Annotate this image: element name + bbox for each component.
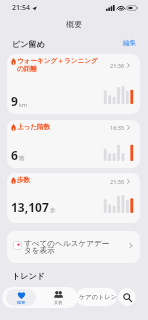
staticText: 16:35 (110, 124, 125, 131)
button[interactable]: すべてのヘルスケアデータを表示 (7, 231, 140, 263)
button[interactable]: 検索 (118, 288, 136, 306)
staticText: すべてのヘルスケアデータを表示 (24, 239, 114, 256)
staticText: 概要 (17, 300, 26, 305)
staticText: トレンド (12, 271, 45, 281)
staticText: 21:54 (12, 3, 30, 13)
button[interactable]: 概要 (6, 289, 36, 306)
staticText: 概要 (0, 19, 148, 29)
staticText: 9 (11, 93, 18, 109)
staticText: 13,107 (11, 199, 49, 215)
button[interactable]: 編集 (123, 39, 136, 47)
staticText: 上った階数 (17, 123, 51, 131)
staticText: ピン留め (12, 39, 45, 49)
button[interactable]: ウォーキング＋ランニングの距離 (7, 54, 140, 114)
button[interactable]: 歩数 (7, 173, 140, 223)
staticText: 歩 (50, 207, 56, 214)
button[interactable]: ケアのトレンド (76, 288, 117, 306)
staticText: 共有 (54, 300, 63, 305)
button[interactable]: 上った階数 (7, 120, 140, 168)
staticText: 6 (11, 147, 18, 163)
staticText: 21:36 (110, 178, 125, 185)
staticText: 階 (19, 155, 25, 162)
staticText: km (19, 101, 28, 108)
staticText: ウォーキング＋ランニングの距離 (17, 57, 103, 73)
staticText: 歩数 (17, 176, 31, 184)
staticText: 21:36 (110, 62, 125, 69)
staticText: 編集 (123, 39, 136, 47)
staticText: ケアのトレンド (79, 293, 117, 301)
button[interactable]: 共有 (44, 289, 73, 306)
